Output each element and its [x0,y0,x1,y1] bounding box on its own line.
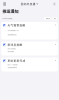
button[interactable]: Menu [2,0,8,8]
staticText: 设置 [54,18,56,19]
button[interactable]: 系统更新完成 [1,57,58,71]
button[interactable]: Profile [51,0,57,8]
button[interactable]: 新消息提醒 [1,41,58,55]
staticText: 全部已读 [45,18,49,19]
staticText: 请注意携带雨具出行。 [7,34,17,35]
button[interactable]: 设置 [52,17,57,20]
staticText: 新消息提醒 [7,43,22,47]
staticText: 今天共收到 3 条新提醒 [2,18,12,19]
staticText: 来自工作群聊。 [7,51,14,52]
staticText: 可在设置中查看详情。 [7,67,17,68]
staticText: 天气预警提醒 [7,24,25,27]
staticText: 你有 2 条未读消息 [7,48,15,50]
staticText: 系统更新完成 [7,59,25,63]
staticText: 推送通知 [3,9,19,14]
button[interactable]: 天气预警提醒 [1,22,58,39]
staticText: 今日午后有雷阵雨，外出 [7,30,18,31]
staticText: 版本 17.2 已安装成功 [7,64,17,66]
button[interactable]: 全部已读 [44,17,51,20]
staticText: 国内外直播 [21,2,36,6]
